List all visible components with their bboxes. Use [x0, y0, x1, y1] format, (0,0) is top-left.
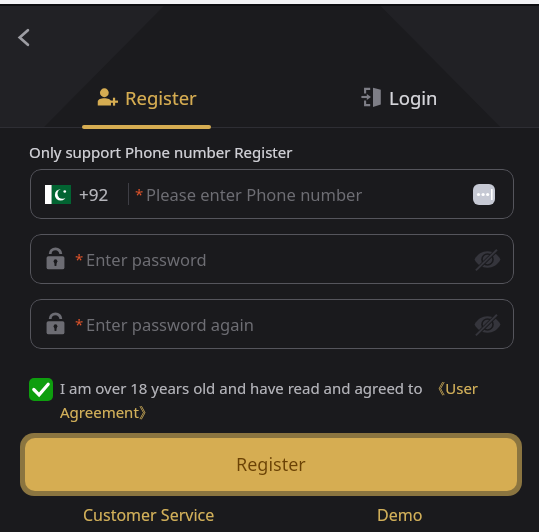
staticText: Enter password — [86, 248, 207, 270]
button[interactable]: Back — [2, 15, 47, 60]
staticText: * — [135, 184, 144, 204]
staticText: Enter password again — [86, 313, 254, 335]
staticText: Register — [125, 85, 197, 110]
staticText: Please enter Phone number — [146, 183, 363, 205]
staticText: Login — [389, 85, 438, 110]
button[interactable]: Login — [361, 75, 438, 119]
button[interactable]: Customer Service — [0, 502, 298, 528]
button[interactable]: More options — [473, 184, 495, 205]
staticText: Customer Service — [83, 504, 215, 526]
staticText: Register — [236, 452, 306, 477]
button[interactable]: Show password — [474, 248, 501, 270]
staticText: * — [75, 249, 84, 269]
button[interactable]: * — [30, 299, 514, 349]
staticText: +92 — [79, 183, 109, 206]
button[interactable]: Show password — [474, 313, 501, 335]
button[interactable]: Agree to terms — [29, 378, 53, 401]
staticText: * — [75, 314, 84, 334]
staticText: Demo — [377, 504, 423, 526]
button[interactable]: Register — [96, 75, 197, 119]
button[interactable]: Register — [25, 438, 517, 491]
staticText: Only support Phone number Register — [29, 142, 293, 162]
button[interactable]: * — [30, 234, 514, 284]
button[interactable]: Demo — [298, 502, 502, 528]
staticText: I am over 18 years old and have read and… — [60, 378, 500, 423]
button[interactable]: +92 — [30, 169, 514, 219]
